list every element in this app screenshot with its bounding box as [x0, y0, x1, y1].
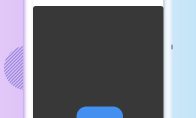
button[interactable]: Side button	[171, 44, 173, 49]
button[interactable]: Continue	[76, 106, 123, 118]
